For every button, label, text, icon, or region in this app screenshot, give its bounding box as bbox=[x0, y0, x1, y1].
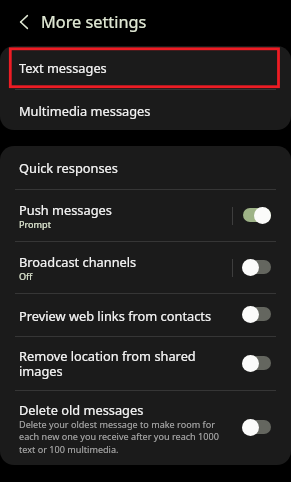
button[interactable]: Back bbox=[7, 5, 41, 39]
staticText: Multimedia messages bbox=[19, 102, 151, 119]
button[interactable]: Toggle off bbox=[242, 354, 272, 372]
button[interactable]: Broadcast channels bbox=[0, 242, 291, 293]
staticText: Push messages bbox=[19, 201, 112, 218]
staticText: Quick responses bbox=[19, 159, 118, 176]
staticText: More settings bbox=[41, 11, 147, 33]
button[interactable]: Toggle on bbox=[242, 206, 272, 224]
button[interactable]: Toggle off bbox=[242, 305, 272, 323]
staticText: Broadcast channels bbox=[19, 253, 137, 270]
button[interactable]: Quick responses bbox=[0, 146, 291, 189]
button[interactable]: Remove location from shared images bbox=[0, 337, 291, 390]
button[interactable]: Preview web links from contacts bbox=[0, 294, 291, 336]
staticText: Preview web links from contacts bbox=[19, 307, 212, 324]
button[interactable]: Delete old messages bbox=[0, 391, 291, 465]
staticText: Prompt bbox=[19, 218, 51, 230]
button[interactable]: Push messages bbox=[0, 190, 291, 241]
staticText: Delete your oldest message to make room … bbox=[19, 418, 234, 456]
button[interactable]: Toggle off bbox=[242, 418, 272, 436]
button[interactable]: Text messages bbox=[0, 46, 291, 89]
staticText: Off bbox=[19, 270, 33, 282]
button[interactable]: Multimedia messages bbox=[0, 90, 291, 130]
staticText: Text messages bbox=[19, 59, 107, 76]
button[interactable]: Toggle off bbox=[242, 258, 272, 276]
staticText: Delete old messages bbox=[19, 401, 144, 418]
staticText: Remove location from shared images bbox=[19, 347, 234, 380]
